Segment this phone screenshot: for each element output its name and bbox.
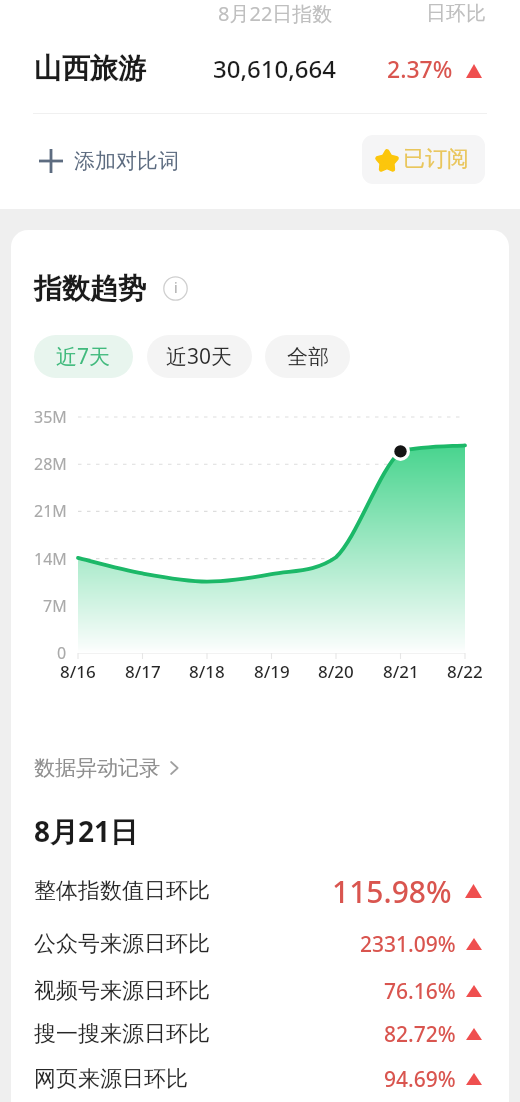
staticText: 指数趋势 (34, 271, 146, 306)
staticText: 近7天 (56, 342, 111, 371)
button[interactable]: 网页来源日环比 (34, 1056, 482, 1102)
staticText: 网页来源日环比 (34, 1065, 188, 1093)
staticText: 添加对比词 (74, 148, 179, 174)
staticText: 7M (43, 595, 67, 617)
staticText: 全部 (287, 344, 329, 370)
staticText: 搜一搜来源日环比 (34, 1020, 210, 1048)
staticText: 8/22 (447, 660, 483, 683)
button[interactable]: 添加对比词 (30, 139, 187, 183)
staticText: 8/21 (383, 660, 419, 683)
staticText: 公众号来源日环比 (34, 930, 210, 958)
staticText: 8/19 (254, 660, 290, 683)
staticText: 近30天 (166, 342, 233, 371)
staticText: 8月21日 (34, 812, 139, 850)
staticText: 115.98% (332, 871, 452, 912)
staticText: 已订阅 (403, 145, 469, 173)
staticText: 山西旅游 (34, 51, 146, 86)
button[interactable]: 视频号来源日环比 (34, 968, 482, 1014)
staticText: 28M (34, 453, 67, 475)
button[interactable]: 近7天 (34, 335, 133, 378)
button[interactable]: 已订阅 (362, 135, 485, 184)
staticText: 整体指数值日环比 (34, 877, 210, 905)
staticText: 8/16 (60, 660, 96, 683)
staticText: 94.69% (384, 1065, 456, 1094)
staticText: 8/17 (125, 660, 161, 683)
staticText: 2331.09% (360, 930, 456, 959)
staticText: 日环比 (426, 1, 486, 26)
staticText: 82.72% (384, 1020, 456, 1049)
staticText: 视频号来源日环比 (34, 977, 210, 1005)
button[interactable]: 近30天 (147, 335, 252, 378)
button[interactable]: 公众号来源日环比 (34, 921, 482, 967)
staticText: i (174, 278, 178, 297)
staticText: 30,610,664 (213, 52, 336, 85)
button[interactable]: 搜一搜来源日环比 (34, 1011, 482, 1057)
staticText: 21M (34, 500, 67, 522)
staticText: 8/20 (318, 660, 354, 683)
staticText: 8/18 (189, 660, 225, 683)
button[interactable]: 整体指数值日环比 (34, 868, 482, 914)
staticText: 8月22日指数 (218, 0, 333, 27)
button[interactable]: 全部 (265, 335, 350, 378)
staticText: 0 (57, 642, 67, 664)
staticText: 35M (34, 406, 67, 428)
staticText: 14M (34, 548, 67, 570)
button[interactable]: 指数趋势 (26, 271, 196, 306)
button[interactable]: 数据异动记录 (26, 750, 192, 786)
staticText: 数据异动记录 (34, 755, 160, 781)
staticText: 76.16% (384, 977, 456, 1006)
staticText: 2.37% (387, 53, 453, 84)
